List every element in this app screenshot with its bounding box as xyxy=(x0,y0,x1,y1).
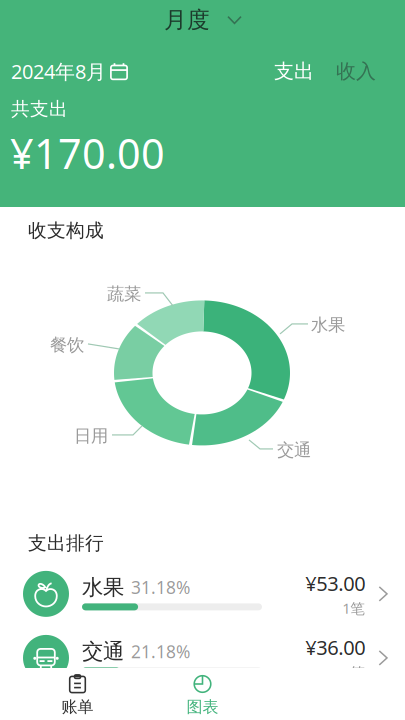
staticText: 21.18% xyxy=(131,640,190,663)
staticText: ¥53.00 xyxy=(305,570,365,596)
staticText: 31.18% xyxy=(131,576,190,599)
staticText: 餐饮 xyxy=(50,334,84,356)
staticText: 账单 xyxy=(61,697,93,717)
staticText: 蔬菜 xyxy=(107,283,141,305)
staticText: 水果 xyxy=(82,574,124,600)
staticText: 图表 xyxy=(186,697,218,717)
staticText: 共支出 xyxy=(11,98,68,120)
button[interactable]: 2024年8月 xyxy=(11,58,128,85)
button[interactable]: 水果 xyxy=(0,570,405,618)
staticText: 月度 xyxy=(164,6,210,34)
staticText: 支出排行 xyxy=(28,532,104,555)
staticText: 收入 xyxy=(336,59,376,84)
staticText: 交通 xyxy=(82,638,124,664)
staticText: 日用 xyxy=(74,425,108,447)
button[interactable]: 图表 xyxy=(140,674,265,717)
staticText: 收支构成 xyxy=(28,219,104,242)
button[interactable]: 交通 xyxy=(0,634,405,682)
staticText: ¥36.00 xyxy=(305,634,365,660)
staticText: 1笔 xyxy=(342,598,365,618)
staticText: 2024年8月 xyxy=(11,58,106,85)
staticText: 交通 xyxy=(277,439,311,461)
button[interactable]: 支出 xyxy=(274,59,314,84)
staticText: 1笔 xyxy=(342,662,365,682)
button[interactable]: 收入 xyxy=(336,59,376,84)
staticText: ¥170.00 xyxy=(10,125,165,180)
button[interactable]: 账单 xyxy=(15,674,140,717)
staticText: 水果 xyxy=(311,314,345,336)
staticText: 支出 xyxy=(274,59,314,84)
button[interactable]: 月度 xyxy=(164,6,241,34)
